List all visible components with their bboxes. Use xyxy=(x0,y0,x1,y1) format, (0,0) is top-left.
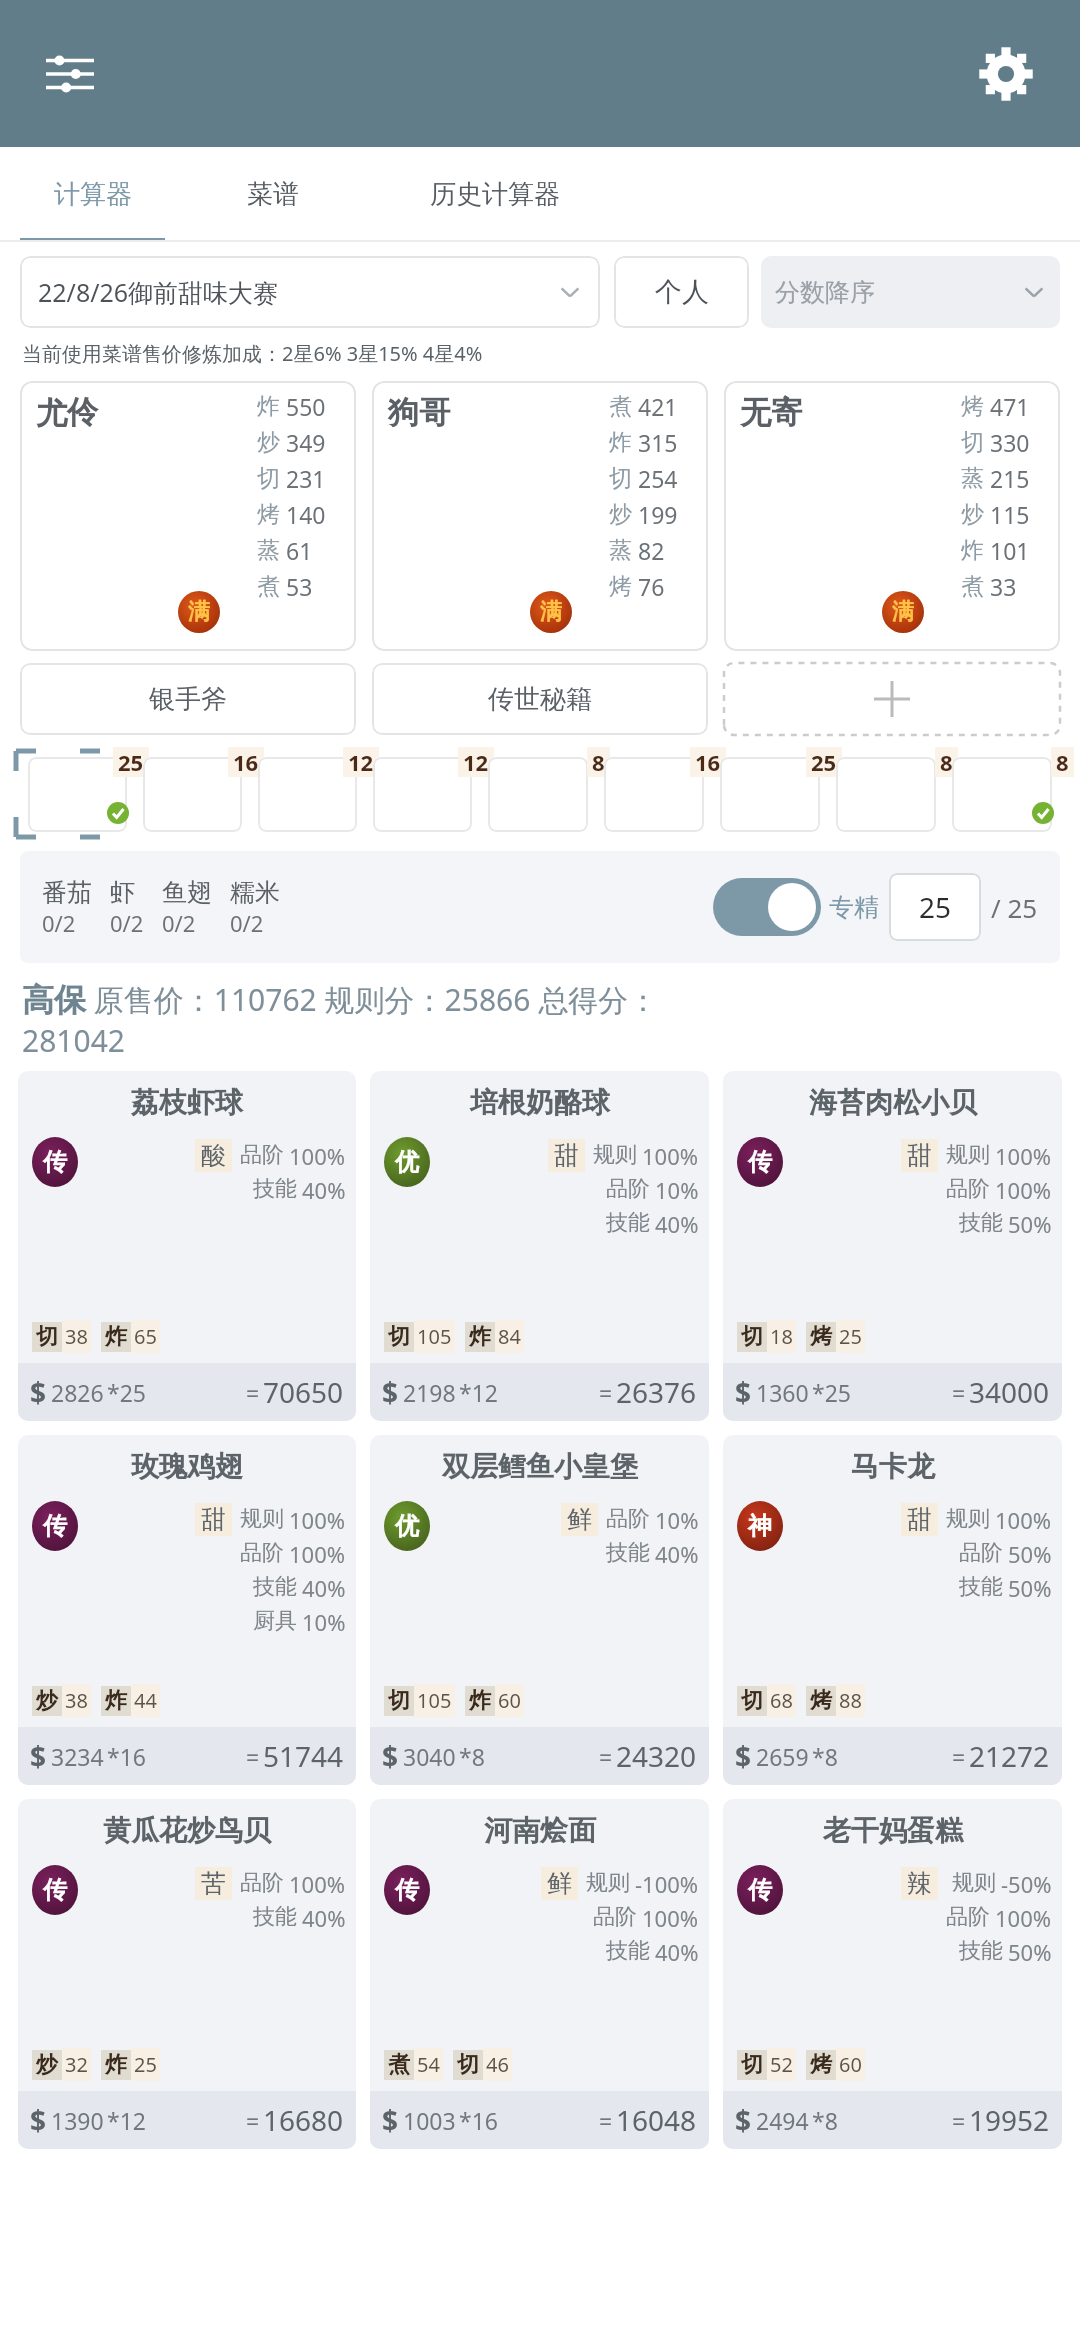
staticText: *25 xyxy=(107,1377,146,1408)
button[interactable] xyxy=(28,757,127,832)
button[interactable]: 无寄 xyxy=(724,381,1060,651)
button[interactable]: Settings xyxy=(966,34,1046,114)
button[interactable]: 老干妈蛋糕 xyxy=(723,1799,1062,2149)
staticText: 规则 xyxy=(946,1505,990,1533)
staticText: $ xyxy=(735,1737,752,1775)
staticText: 2659 xyxy=(756,1741,809,1772)
button[interactable] xyxy=(720,757,820,832)
staticText: 满 xyxy=(892,598,914,626)
staticText: 100% xyxy=(995,1175,1052,1205)
staticText: *25 xyxy=(812,1377,851,1408)
button[interactable]: 菜谱 xyxy=(185,147,360,242)
button[interactable]: 海苔肉松小贝 xyxy=(723,1071,1062,1421)
staticText: 煮 xyxy=(609,392,632,421)
staticText: $ xyxy=(30,1737,47,1775)
button[interactable] xyxy=(836,757,936,832)
button[interactable]: 黄瓜花炒鸟贝 xyxy=(18,1799,356,2149)
staticText: 0/2 xyxy=(110,908,144,938)
staticText: 12 xyxy=(463,747,489,777)
button[interactable] xyxy=(373,757,472,832)
button[interactable]: 个人 xyxy=(614,256,749,328)
staticText: 狗哥 xyxy=(388,393,450,432)
button[interactable]: Filters xyxy=(34,38,106,110)
staticText: 2494 xyxy=(756,2105,809,2136)
staticText: 切 xyxy=(257,464,280,493)
staticText: 技能 xyxy=(959,1209,1003,1237)
button[interactable] xyxy=(143,757,242,832)
button[interactable]: 荔枝虾球 xyxy=(18,1071,356,1421)
staticText: 高保 xyxy=(22,980,86,1020)
staticText: 切 xyxy=(961,428,984,457)
staticText: 切 xyxy=(388,1323,410,1351)
staticText: 115 xyxy=(990,499,1030,530)
staticText: 炸 xyxy=(469,1323,491,1351)
staticText: 51744 xyxy=(263,1737,344,1775)
button[interactable]: 计算器 xyxy=(0,147,185,242)
staticText: 传世秘籍 xyxy=(488,683,592,716)
staticText: 10% xyxy=(302,1607,346,1637)
button[interactable]: 25 xyxy=(889,873,981,941)
staticText: 25 xyxy=(134,2051,157,2078)
button[interactable]: 传世秘籍 xyxy=(372,663,708,735)
staticText: 19952 xyxy=(969,2101,1050,2139)
button[interactable]: 马卡龙 xyxy=(723,1435,1062,1785)
staticText: 原售价：110762 规则分：25866 总得分： xyxy=(86,979,659,1020)
staticText: 50% xyxy=(1008,1209,1052,1239)
staticText: 技能 xyxy=(606,1209,650,1237)
staticText: 100% xyxy=(642,1903,699,1933)
staticText: 65 xyxy=(134,1323,157,1350)
staticText: 25 xyxy=(839,1323,862,1350)
button[interactable] xyxy=(258,757,357,832)
staticText: 炸 xyxy=(257,392,280,421)
button[interactable]: 历史计算器 xyxy=(360,147,630,242)
staticText: = xyxy=(246,1377,260,1408)
staticText: 品阶 xyxy=(959,1539,1003,1567)
staticText: 100% xyxy=(995,1903,1052,1933)
staticText: 26376 xyxy=(616,1373,697,1411)
button[interactable]: 双层鳕鱼小皇堡 xyxy=(370,1435,709,1785)
button[interactable]: 22/8/26御前甜味大赛 xyxy=(20,256,600,328)
staticText: 炸 xyxy=(105,1323,127,1351)
staticText: 品阶 xyxy=(240,1141,284,1169)
staticText: 烤 xyxy=(609,572,632,601)
button[interactable]: 玫瑰鸡翅 xyxy=(18,1435,356,1785)
button[interactable]: Add equipment xyxy=(724,663,1060,735)
staticText: 3040 xyxy=(403,1741,456,1772)
button[interactable]: 河南烩面 xyxy=(370,1799,709,2149)
staticText: 100% xyxy=(995,1505,1052,1535)
staticText: 烤 xyxy=(810,1323,832,1351)
staticText: *12 xyxy=(107,2105,146,2136)
staticText: 炸 xyxy=(609,428,632,457)
staticText: 61 xyxy=(286,535,313,566)
staticText: 规则 xyxy=(952,1869,996,1897)
staticText: 40% xyxy=(302,1175,346,1205)
staticText: $ xyxy=(735,1373,752,1411)
button[interactable] xyxy=(604,757,704,832)
staticText: 40% xyxy=(302,1573,346,1603)
button[interactable] xyxy=(952,757,1052,832)
staticText: $ xyxy=(382,1373,399,1411)
button[interactable]: 狗哥 xyxy=(372,381,708,651)
staticText: 银手斧 xyxy=(149,683,227,716)
staticText: 满 xyxy=(188,598,210,626)
staticText: 315 xyxy=(638,427,678,458)
staticText: 优 xyxy=(395,1147,419,1177)
staticText: 传 xyxy=(43,1875,67,1905)
staticText: 传 xyxy=(748,1147,772,1177)
button[interactable]: 分数降序 xyxy=(761,256,1060,328)
staticText: / 25 xyxy=(991,890,1038,925)
button[interactable]: 培根奶酪球 xyxy=(370,1071,709,1421)
staticText: *8 xyxy=(812,1741,838,1772)
staticText: 技能 xyxy=(959,1937,1003,1965)
staticText: 炒 xyxy=(961,500,984,529)
button[interactable]: Toggle 专精 xyxy=(713,878,821,936)
staticText: 计算器 xyxy=(54,178,132,211)
staticText: 规则 xyxy=(586,1869,630,1897)
button[interactable]: 银手斧 xyxy=(20,663,356,735)
staticText: *8 xyxy=(459,1741,485,1772)
staticText: 品阶 xyxy=(606,1505,650,1533)
staticText: 16 xyxy=(233,747,259,777)
staticText: 规则 xyxy=(240,1505,284,1533)
button[interactable] xyxy=(488,757,588,832)
button[interactable]: 尤伶 xyxy=(20,381,356,651)
